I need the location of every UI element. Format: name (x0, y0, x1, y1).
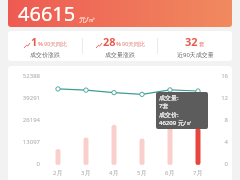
staticText: 7月 (193, 169, 203, 177)
button[interactable]: 32 (158, 31, 232, 61)
staticText: 8 (224, 116, 228, 124)
staticText: 2月 (53, 169, 63, 177)
staticText: 0 (224, 160, 228, 168)
staticText: 近90天成交量 (177, 51, 214, 59)
staticText: 46209 元/㎡ (159, 119, 192, 127)
staticText: 90天同比 (44, 40, 67, 48)
button[interactable]: 上涨 (8, 31, 82, 61)
staticText: 39291 (22, 94, 40, 102)
staticText: 成交价涨跌 (30, 51, 60, 59)
staticText: 3月 (81, 169, 91, 177)
staticText: 0 (36, 160, 40, 168)
button[interactable]: 52388 (8, 66, 232, 180)
other: 上涨 (96, 43, 102, 48)
staticText: 12 (221, 94, 228, 102)
staticText: 90天同比 (122, 40, 145, 48)
staticText: % (38, 40, 43, 48)
staticText: 32 (185, 34, 198, 49)
staticText: 4 (224, 138, 228, 146)
staticText: 46615 (18, 0, 76, 27)
button[interactable]: 上涨 (83, 31, 157, 61)
other: 上涨 (24, 43, 30, 48)
staticText: 13097 (22, 138, 40, 146)
staticText: 6月 (165, 169, 175, 177)
staticText: 成交价: (159, 111, 179, 119)
staticText: 1 (31, 34, 38, 49)
staticText: 元/㎡ (79, 15, 96, 25)
staticText: 5月 (137, 169, 147, 177)
staticText: 16 (221, 72, 228, 80)
staticText: 26194 (22, 116, 40, 124)
staticText: 4月 (109, 169, 119, 177)
button[interactable]: 46615 (8, 0, 232, 27)
staticText: % (116, 40, 121, 48)
staticText: 52388 (22, 72, 40, 80)
staticText: 成交量: (159, 94, 179, 102)
staticText: 7套 (159, 102, 169, 110)
staticText: 28 (103, 34, 116, 49)
staticText: 套 (199, 41, 205, 48)
staticText: 成交量涨跌 (105, 51, 135, 59)
